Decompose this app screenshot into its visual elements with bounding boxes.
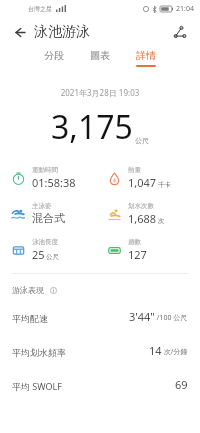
staticText: 公尺 xyxy=(46,253,59,261)
staticText: 次/分鐘 xyxy=(162,347,188,357)
staticText: 次 xyxy=(158,217,165,225)
button[interactable]: 平均 SWOLF xyxy=(12,377,188,392)
staticText: 127 xyxy=(128,247,147,262)
staticText: 公尺 xyxy=(135,136,149,145)
staticText: 14 xyxy=(149,343,162,358)
staticText: 圖表 xyxy=(90,49,110,62)
button[interactable]: 圖表 xyxy=(85,47,115,69)
staticText: 泳池長度 xyxy=(32,238,58,246)
staticText: 划水次數 xyxy=(128,202,154,210)
staticText: 分段 xyxy=(44,49,64,62)
staticText: 平均 SWOLF xyxy=(12,380,62,392)
button[interactable]: 運動時間 xyxy=(10,166,100,190)
staticText: 3'44" xyxy=(129,309,155,324)
staticText: 3,175 xyxy=(51,105,133,149)
staticText: 主泳姿 xyxy=(32,202,52,210)
button[interactable]: 詳情 xyxy=(131,47,161,69)
staticText: 1,047 xyxy=(128,175,157,190)
staticText: 趟數 xyxy=(128,238,141,246)
button[interactable]: Info xyxy=(47,284,59,296)
button[interactable]: Share xyxy=(168,20,192,44)
staticText: 21:04 xyxy=(176,4,194,14)
staticText: 運動時間 xyxy=(32,166,58,174)
staticText: 詳情 xyxy=(136,49,156,62)
staticText: 01:58:38 xyxy=(32,175,76,190)
staticText: 平均配速 xyxy=(12,313,48,324)
button[interactable]: 熱量 xyxy=(106,166,200,190)
staticText: 2021年3月28日 19:03 xyxy=(0,87,200,98)
staticText: 1,688 xyxy=(128,211,157,226)
button[interactable]: 分段 xyxy=(39,47,69,69)
staticText: 泳池游泳 xyxy=(34,23,90,41)
staticText: 千卡 xyxy=(158,181,171,189)
button[interactable]: 平均配速 xyxy=(12,309,188,324)
staticText: 台灣之星 xyxy=(28,5,52,13)
staticText: 平均划水頻率 xyxy=(12,347,66,358)
button[interactable]: 趟數 xyxy=(106,238,200,262)
button[interactable]: 泳池長度 xyxy=(10,238,100,262)
staticText: 熱量 xyxy=(128,166,141,174)
staticText: 25 xyxy=(32,247,45,262)
staticText: 游泳表現 xyxy=(12,285,44,295)
button[interactable]: Back xyxy=(7,20,31,44)
button[interactable]: 平均划水頻率 xyxy=(12,343,188,358)
button[interactable]: 划水次數 xyxy=(106,202,200,226)
staticText: 混合式 xyxy=(32,211,65,225)
button[interactable]: 主泳姿 xyxy=(10,202,100,225)
staticText: 69 xyxy=(175,377,188,392)
staticText: /100 公尺 xyxy=(155,313,188,323)
